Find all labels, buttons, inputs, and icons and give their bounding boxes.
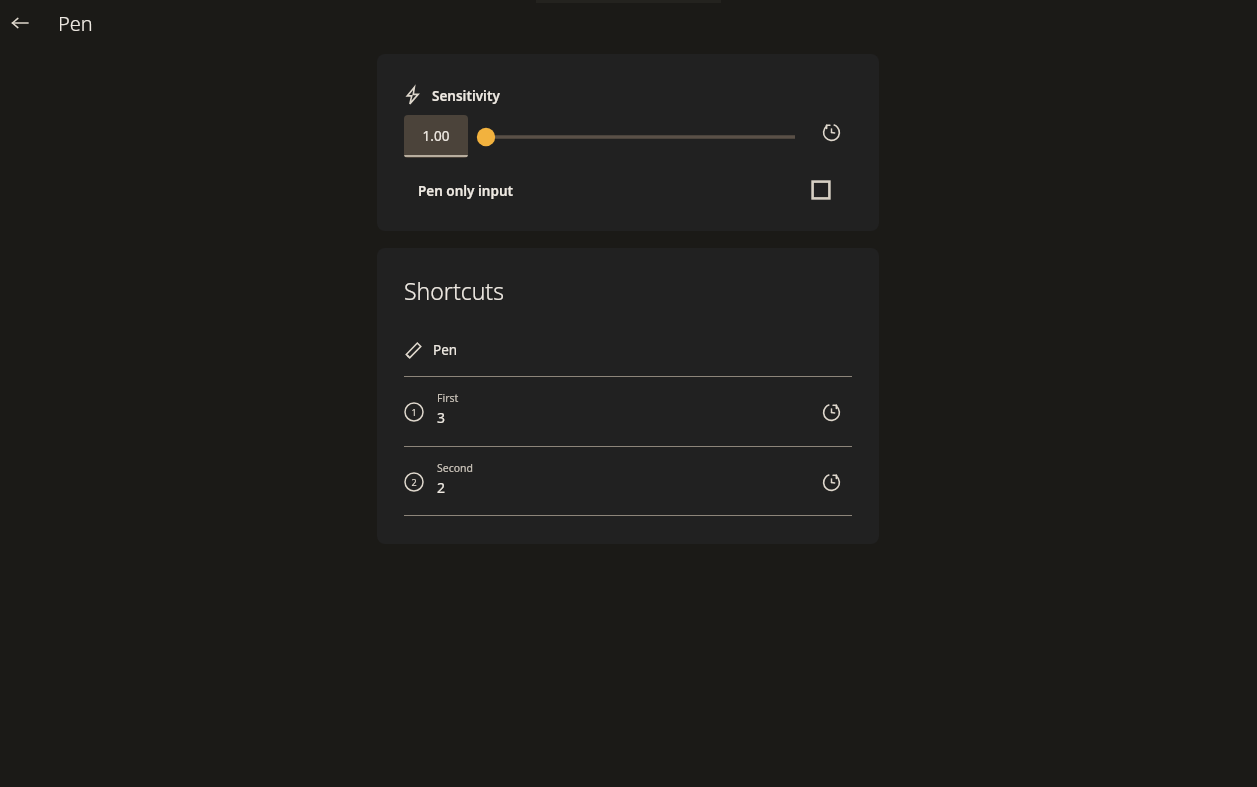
button[interactable]: Pen [377,326,879,375]
button[interactable]: Reset sensitivity [813,114,849,150]
staticText: Second [437,461,474,475]
staticText: 2 [437,478,446,497]
staticText: 3 [437,408,446,427]
staticText: First [437,391,459,405]
button[interactable]: Reset Second [813,464,849,500]
staticText: Pen only input [418,182,513,200]
staticText: Pen [433,341,458,359]
button[interactable]: 1 [377,377,879,446]
button[interactable]: 1.00 [404,115,468,158]
staticText: 2 [404,476,424,492]
button[interactable]: Pen only input [377,166,879,216]
staticText: Sensitivity [432,87,500,105]
button[interactable]: Back [2,5,38,41]
button[interactable]: Sensitivity slider [477,122,797,152]
button[interactable]: Reset First [813,394,849,430]
staticText: 1.00 [404,127,468,145]
staticText: 1 [404,406,424,422]
button[interactable]: 2 [377,447,879,516]
staticText: Pen [58,10,93,37]
staticText: Shortcuts [404,275,504,306]
